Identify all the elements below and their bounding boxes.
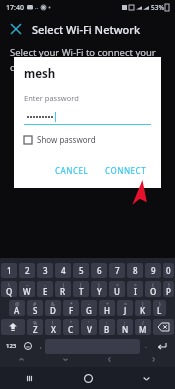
button[interactable]: Back (117, 367, 175, 389)
staticText: 0 (166, 265, 171, 276)
button[interactable]: 1 (1, 263, 17, 278)
staticText: U (114, 286, 120, 297)
staticText: Y (97, 286, 102, 297)
button[interactable]: * (63, 300, 79, 316)
staticText: E (43, 286, 48, 297)
staticText: 6 (97, 265, 102, 276)
button[interactable]: : (99, 319, 115, 335)
button[interactable]: up (0, 354, 43, 365)
staticText: T (79, 286, 84, 297)
button[interactable]: ( (135, 300, 151, 316)
button[interactable]: Enter (151, 338, 173, 354)
staticText: ) (98, 282, 100, 289)
button[interactable]: 8 (127, 263, 143, 278)
button[interactable]: | (55, 281, 71, 297)
staticText: D (50, 305, 56, 316)
button[interactable]: Close (0, 15, 32, 43)
staticText: + (106, 301, 109, 308)
button[interactable]: Home (59, 367, 117, 389)
staticText: Z (33, 324, 38, 335)
staticText: 8 (133, 265, 138, 276)
button[interactable]: 7 (109, 263, 125, 278)
button[interactable]: + (99, 300, 115, 316)
button[interactable]: Show password (24, 134, 96, 145)
staticText: @ (15, 301, 20, 308)
staticText: W (23, 286, 31, 297)
button[interactable]: % (27, 319, 43, 335)
button[interactable]: 4 (55, 263, 71, 278)
button[interactable]: > (127, 281, 143, 297)
button[interactable]: - (37, 281, 53, 297)
staticText: 7 (115, 265, 120, 276)
button[interactable]: < (109, 281, 125, 297)
button[interactable]: @ (9, 300, 25, 316)
staticText: Enter password (24, 93, 79, 103)
staticText: 3 (43, 265, 48, 276)
staticText: 4 (61, 265, 66, 276)
staticText: O (150, 286, 157, 297)
staticText: 123 (6, 342, 17, 350)
staticText: 1 (7, 265, 12, 276)
button[interactable]: ) (153, 300, 166, 316)
staticText: / (142, 320, 144, 327)
button[interactable]: Shift (1, 319, 25, 335)
button[interactable]: 0 (163, 263, 174, 278)
button[interactable]: CANCEL (51, 162, 93, 179)
button[interactable]: Emoji (20, 338, 36, 354)
button[interactable]: / (135, 319, 151, 335)
button[interactable]: - (81, 300, 97, 316)
staticText: ) (159, 301, 161, 308)
button[interactable]: ( (73, 281, 89, 297)
staticText: CANCEL (55, 165, 89, 176)
staticText: 53% (151, 3, 164, 12)
staticText: \ (8, 282, 10, 289)
button[interactable]: 5 (73, 263, 89, 278)
staticText: < (116, 282, 119, 289)
button[interactable]: ; (117, 319, 133, 335)
button[interactable]: 2 (19, 263, 35, 278)
staticText: P (166, 286, 171, 297)
button[interactable]: CONNECT (101, 162, 151, 179)
staticText: : (106, 320, 108, 327)
staticText: , (40, 341, 42, 351)
button[interactable]: 123 (2, 338, 20, 354)
button[interactable]: 6 (91, 263, 107, 278)
staticText: Q (6, 286, 13, 297)
staticText: # (33, 301, 37, 308)
staticText: . (145, 341, 147, 351)
button[interactable]: } (163, 281, 174, 297)
button[interactable]: ! (45, 319, 61, 335)
button[interactable]: # (27, 300, 43, 316)
staticText: 5 (79, 265, 84, 276)
button[interactable]: " (63, 319, 79, 335)
button[interactable]: { (145, 281, 161, 297)
staticText: Select your Wi-Fi to connect your (10, 46, 156, 59)
button[interactable]: Recents (0, 367, 59, 389)
button[interactable]: right (131, 354, 175, 365)
staticText: ( (142, 301, 144, 308)
staticText: Select Wi-Fi Network (32, 22, 141, 37)
staticText: F (69, 305, 74, 316)
staticText: } (168, 282, 170, 289)
button[interactable]: left (87, 354, 131, 365)
button[interactable]: ) (91, 281, 107, 297)
staticText: { (152, 282, 154, 289)
button[interactable]: = (117, 300, 133, 316)
button[interactable]: Backspace (153, 319, 174, 335)
staticText: " (70, 320, 73, 327)
button[interactable]: & (45, 300, 61, 316)
button[interactable]: ' (81, 319, 97, 335)
staticText: & (51, 301, 55, 308)
staticText: ·· (35, 4, 39, 12)
staticText: B (104, 324, 110, 335)
button[interactable]: ~ (19, 281, 35, 297)
button[interactable]: down (43, 354, 87, 365)
button[interactable]: 9 (145, 263, 161, 278)
staticText: N (122, 324, 129, 335)
staticText: ' (88, 320, 90, 327)
staticText: 2 (25, 265, 30, 276)
staticText: mesh (24, 66, 56, 82)
button[interactable]: \ (1, 281, 17, 297)
button[interactable]: 3 (37, 263, 53, 278)
